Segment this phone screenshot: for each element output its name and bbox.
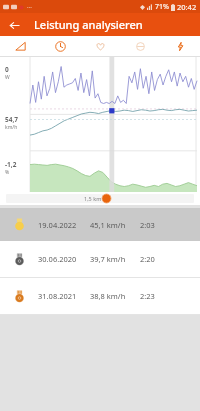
button[interactable]: 31.08.2021: [0, 278, 200, 314]
staticText: 54,7: [5, 115, 19, 124]
staticText: 38,8 km/h: [90, 291, 140, 301]
staticText: 2:03: [140, 220, 200, 230]
staticText: 20:42: [177, 2, 197, 12]
button[interactable]: Heart rate: [80, 36, 120, 56]
button[interactable]: 1,5 km: [0, 192, 200, 205]
button[interactable]: 19.04.2022: [0, 208, 200, 241]
staticText: 2:20: [140, 254, 200, 264]
button[interactable]: 30.06.2020: [0, 241, 200, 277]
button[interactable]: Slope: [0, 36, 40, 56]
staticText: km/h: [5, 124, 18, 131]
staticText: 1,5 km: [84, 195, 102, 202]
button[interactable]: Power: [160, 36, 200, 56]
button[interactable]: Time: [40, 36, 80, 56]
staticText: 31.08.2021: [38, 291, 90, 301]
staticText: %: [5, 169, 10, 176]
button[interactable]: Back: [5, 16, 23, 34]
staticText: 19.04.2022: [38, 220, 90, 230]
staticText: W: [5, 74, 10, 81]
staticText: 0: [5, 65, 9, 74]
button[interactable]: Cadence: [120, 36, 160, 56]
staticText: ···: [27, 3, 32, 11]
staticText: 2:23: [140, 291, 200, 301]
staticText: Leistung analysieren: [34, 17, 143, 32]
staticText: 45,1 km/h: [90, 220, 140, 230]
staticText: 39,7 km/h: [90, 254, 140, 264]
staticText: 71%: [155, 2, 169, 12]
staticText: -1,2: [5, 160, 17, 169]
staticText: 30.06.2020: [38, 254, 90, 264]
